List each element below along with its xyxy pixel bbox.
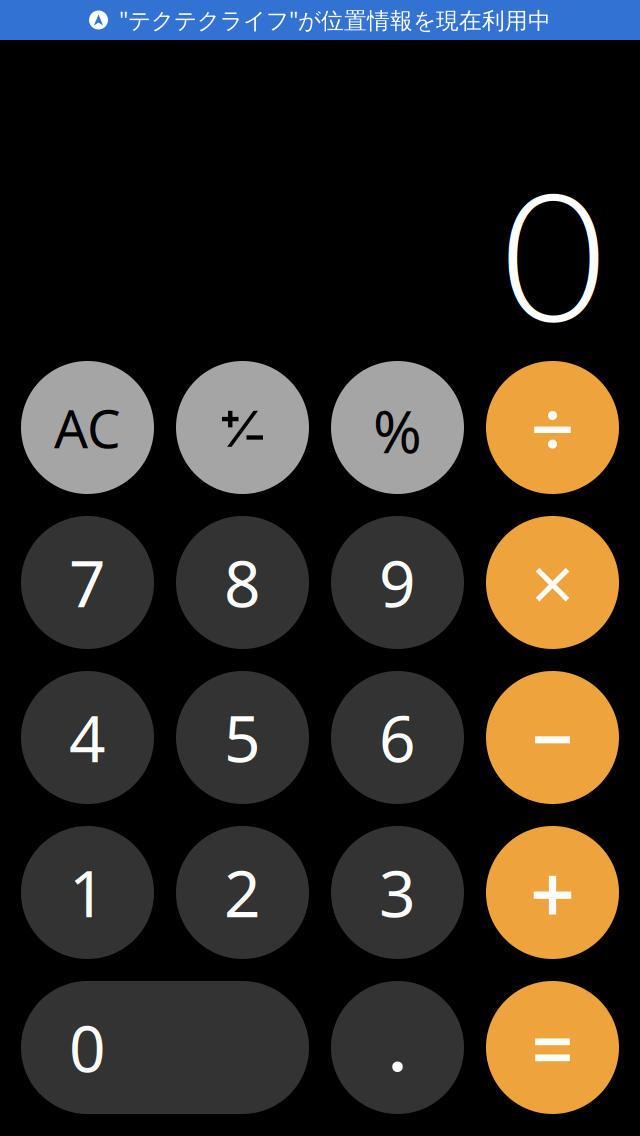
staticText: AC (54, 392, 121, 463)
button[interactable]: 1 (21, 826, 154, 959)
button[interactable]: AC (21, 361, 154, 494)
staticText: 4 (69, 695, 106, 780)
staticText: 2 (224, 850, 261, 935)
button[interactable]: Decimal point (331, 981, 464, 1114)
staticText: 6 (379, 695, 416, 780)
staticText: 9 (379, 540, 416, 625)
button[interactable]: 4 (21, 671, 154, 804)
button[interactable]: 3 (331, 826, 464, 959)
staticText: 3 (379, 850, 416, 935)
button[interactable]: 0 (21, 981, 309, 1114)
staticText: 5 (224, 695, 261, 780)
button[interactable]: 2 (176, 826, 309, 959)
button[interactable]: 7 (21, 516, 154, 649)
staticText: 0 (69, 1005, 106, 1090)
staticText: 1 (69, 850, 106, 935)
button[interactable]: 位置情報を現在利用中 (0, 0, 640, 40)
button[interactable]: % (331, 361, 464, 494)
button[interactable]: 9 (331, 516, 464, 649)
staticText: 8 (224, 540, 261, 625)
button[interactable]: Multiply (486, 516, 619, 649)
staticText: % (373, 391, 422, 469)
button[interactable]: 6 (331, 671, 464, 804)
button[interactable]: 5 (176, 671, 309, 804)
staticText: "テクテクライフ"が位置情報を現在利用中 (119, 5, 551, 35)
button[interactable]: Add (486, 826, 619, 959)
staticText: 7 (69, 540, 106, 625)
button[interactable]: Divide (486, 361, 619, 494)
button[interactable]: Plus Minus (176, 361, 309, 494)
button[interactable]: Equals (486, 981, 619, 1114)
button[interactable]: 8 (176, 516, 309, 649)
staticText: 0 (502, 147, 605, 359)
button[interactable]: Subtract (486, 671, 619, 804)
